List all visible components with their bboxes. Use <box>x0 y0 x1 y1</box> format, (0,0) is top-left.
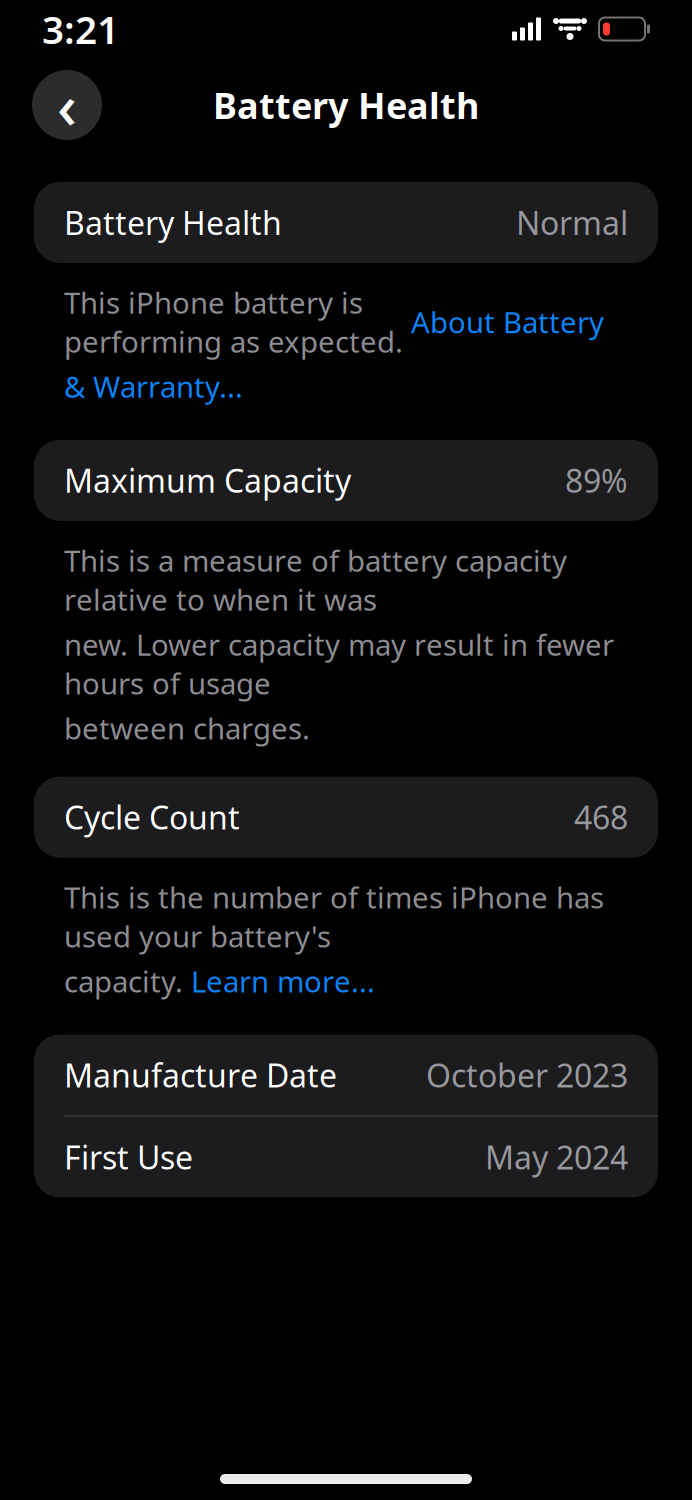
staticText: Battery Health <box>64 201 282 244</box>
button[interactable]: Manufacture Date <box>34 1034 658 1115</box>
staticText: About Battery <box>411 302 604 341</box>
staticText: October 2023 <box>426 1054 628 1096</box>
staticText: between charges. <box>64 709 310 748</box>
staticText: new. Lower capacity may result in fewer … <box>64 625 614 703</box>
staticText: May 2024 <box>485 1136 628 1178</box>
staticText: 89% <box>565 459 628 502</box>
staticText: This iPhone battery is performing as exp… <box>64 283 411 361</box>
staticText: & Warranty... <box>64 367 243 406</box>
button[interactable]: Battery Health <box>34 182 658 263</box>
staticText: 468 <box>574 796 628 838</box>
staticText: First Use <box>64 1136 193 1178</box>
button[interactable]: First Use <box>34 1116 658 1197</box>
staticText: Learn more... <box>191 961 375 1000</box>
staticText: This is a measure of battery capacity re… <box>64 541 567 619</box>
staticText: Normal <box>516 201 628 244</box>
staticText: capacity. <box>64 961 191 1000</box>
staticText: ‹ <box>57 64 77 146</box>
staticText: Battery Health <box>213 81 479 129</box>
staticText: 3:21 <box>42 3 119 55</box>
staticText: Manufacture Date <box>64 1054 337 1096</box>
staticText: Cycle Count <box>64 796 240 838</box>
staticText: Maximum Capacity <box>64 459 351 502</box>
button[interactable]: Back <box>32 70 102 140</box>
staticText: This is the number of times iPhone has u… <box>64 878 604 955</box>
button[interactable]: Cycle Count <box>34 777 658 858</box>
button[interactable]: Maximum Capacity <box>34 440 658 521</box>
